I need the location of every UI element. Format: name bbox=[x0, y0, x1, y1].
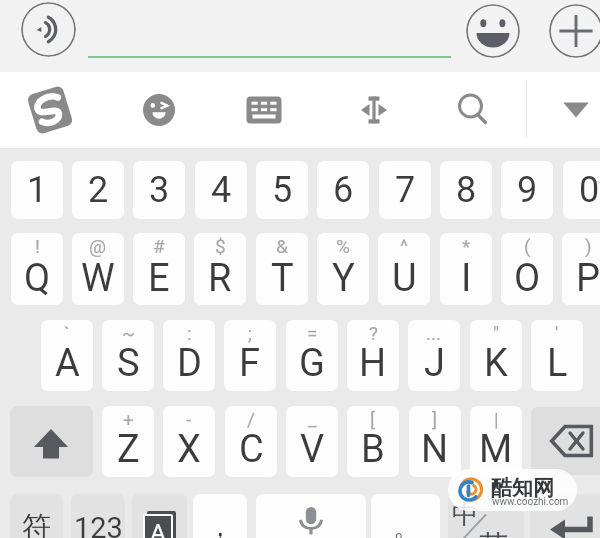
button[interactable]: [ bbox=[347, 406, 399, 477]
button[interactable]: 9 bbox=[501, 161, 553, 219]
button[interactable]: Enter bbox=[530, 494, 600, 538]
button[interactable]: Switch Chinese English bbox=[448, 494, 524, 538]
staticText: ? bbox=[369, 322, 378, 344]
button[interactable]: ; bbox=[224, 320, 276, 391]
button[interactable]: 8 bbox=[440, 161, 492, 219]
button[interactable]: 5 bbox=[256, 161, 308, 219]
staticText: W bbox=[81, 256, 115, 301]
staticText: B bbox=[361, 427, 385, 472]
button[interactable]: 符 bbox=[10, 494, 63, 538]
button[interactable]: ? bbox=[347, 320, 399, 391]
button[interactable]: 3 bbox=[133, 161, 185, 219]
staticText: + bbox=[123, 408, 134, 430]
staticText: _ bbox=[308, 408, 317, 430]
staticText: ! bbox=[35, 235, 40, 257]
staticText: A bbox=[150, 515, 166, 538]
staticText: M bbox=[479, 427, 513, 472]
button[interactable]: Move cursor bbox=[350, 86, 398, 134]
button[interactable]: " bbox=[470, 320, 522, 391]
staticText: : bbox=[187, 322, 192, 344]
staticText: 5 bbox=[272, 169, 293, 211]
button[interactable]: + bbox=[102, 406, 154, 477]
button[interactable]: ^ bbox=[378, 233, 430, 305]
button[interactable]: = bbox=[286, 320, 338, 391]
button[interactable]: Emoji bbox=[466, 4, 520, 58]
staticText: www.coozhi.com bbox=[492, 496, 569, 508]
staticText: | bbox=[494, 408, 499, 430]
staticText: Y bbox=[332, 256, 355, 301]
button[interactable]: 123 bbox=[71, 494, 125, 538]
staticText: [ bbox=[370, 408, 376, 430]
button[interactable]: More options bbox=[552, 86, 600, 134]
staticText: Q bbox=[24, 256, 51, 301]
staticText: ` bbox=[64, 322, 70, 344]
staticText: 3 bbox=[149, 169, 170, 211]
button[interactable]: - bbox=[163, 406, 215, 477]
button[interactable]: / bbox=[225, 406, 277, 477]
staticText: # bbox=[153, 235, 165, 257]
button[interactable]: 6 bbox=[317, 161, 369, 219]
button[interactable]: % bbox=[317, 233, 369, 305]
button[interactable]: _ bbox=[286, 406, 338, 477]
button[interactable]: | bbox=[470, 406, 522, 477]
staticText: R bbox=[208, 256, 232, 301]
button[interactable]: : bbox=[163, 320, 215, 391]
staticText: T bbox=[271, 256, 294, 301]
staticText: % bbox=[336, 235, 350, 257]
button[interactable]: Keyboard layout bbox=[240, 86, 288, 134]
staticText: 1 bbox=[27, 169, 48, 211]
button[interactable]: Search bbox=[449, 86, 497, 134]
button[interactable]: ... bbox=[408, 320, 460, 391]
button[interactable]: 1 bbox=[11, 161, 63, 219]
staticText: ; bbox=[248, 322, 253, 344]
staticText: L bbox=[547, 341, 568, 386]
button[interactable]: ` bbox=[41, 320, 93, 391]
button[interactable]: 0 bbox=[563, 161, 600, 219]
button[interactable]: 4 bbox=[195, 161, 247, 219]
button[interactable]: ， bbox=[193, 494, 247, 538]
button[interactable]: Sogou input settings bbox=[26, 86, 74, 134]
button[interactable]: ! bbox=[11, 233, 63, 305]
button[interactable]: ' bbox=[531, 320, 583, 391]
button[interactable]: @ bbox=[72, 233, 124, 305]
button[interactable]: Add bbox=[549, 4, 600, 58]
staticText: 0 bbox=[579, 169, 600, 211]
staticText: 。 bbox=[393, 511, 419, 538]
staticText: I bbox=[461, 256, 472, 301]
button[interactable]: Stickers bbox=[135, 86, 183, 134]
button[interactable]: Capitalization mode bbox=[132, 494, 187, 538]
button[interactable]: # bbox=[133, 233, 185, 305]
staticText: D bbox=[177, 341, 202, 386]
staticText: ( bbox=[524, 235, 531, 257]
staticText: P bbox=[576, 256, 600, 301]
staticText: $ bbox=[215, 235, 226, 257]
button[interactable]: Voice input bbox=[256, 494, 366, 538]
staticText: / bbox=[247, 408, 255, 430]
button[interactable]: Backspace bbox=[531, 407, 600, 475]
staticText: @ bbox=[89, 235, 107, 257]
staticText: 123 bbox=[74, 511, 123, 538]
staticText: ' bbox=[555, 322, 559, 344]
staticText: ~ bbox=[122, 322, 135, 344]
button[interactable]: ( bbox=[501, 233, 553, 305]
button[interactable]: 2 bbox=[72, 161, 124, 219]
staticText: ^ bbox=[400, 235, 408, 257]
button[interactable]: $ bbox=[194, 233, 246, 305]
button[interactable]: * bbox=[440, 233, 492, 305]
button[interactable]: Shift bbox=[10, 406, 93, 477]
staticText: = bbox=[307, 322, 318, 344]
staticText: K bbox=[484, 341, 508, 386]
button[interactable]: ~ bbox=[102, 320, 154, 391]
button[interactable]: ) bbox=[562, 233, 600, 305]
button[interactable]: & bbox=[256, 233, 308, 305]
staticText: " bbox=[493, 322, 500, 344]
staticText: U bbox=[392, 256, 417, 301]
staticText: X bbox=[177, 427, 201, 472]
staticText: ... bbox=[426, 322, 442, 344]
button[interactable]: ] bbox=[409, 406, 461, 477]
staticText: 2 bbox=[88, 169, 109, 211]
staticText: E bbox=[148, 256, 170, 301]
button[interactable]: 7 bbox=[379, 161, 431, 219]
button[interactable]: Voice input bbox=[21, 2, 76, 57]
button[interactable]: 。 bbox=[371, 494, 440, 538]
